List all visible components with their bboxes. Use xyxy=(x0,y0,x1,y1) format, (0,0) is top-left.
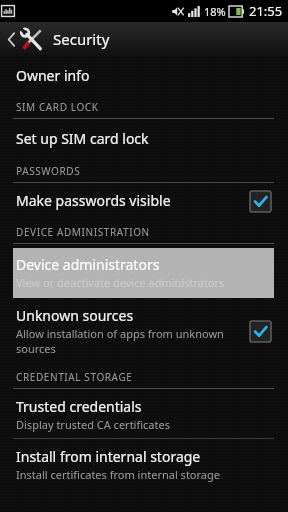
staticText: DEVICE ADMINISTRATION xyxy=(16,225,150,239)
staticText: Install from internal storage xyxy=(16,447,201,466)
other: Navigate up xyxy=(7,31,16,48)
button[interactable]: Owner info xyxy=(0,60,288,91)
button[interactable]: Set up SIM card lock xyxy=(0,123,288,155)
staticText: PASSWORDS xyxy=(16,164,81,178)
staticText: Make passwords visible xyxy=(16,191,171,210)
button[interactable]: Trusted credentials xyxy=(0,392,288,438)
staticText: Display trusted CA certificates xyxy=(16,417,170,432)
staticText: SIM CARD LOCK xyxy=(16,100,99,114)
staticText: View or deactivate device administrators xyxy=(16,275,225,290)
staticText: Unknown sources xyxy=(16,306,134,325)
other: Silent mode xyxy=(171,5,184,18)
staticText: CREDENTIAL STORAGE xyxy=(16,370,133,384)
staticText: 18% xyxy=(204,4,226,19)
button[interactable]: Unknown sources xyxy=(0,301,288,361)
button[interactable]: Navigate up xyxy=(0,22,288,56)
button[interactable]: Device administrators xyxy=(13,248,274,298)
staticText: Allow installation of apps from unknown … xyxy=(16,326,224,356)
button[interactable]: Make passwords visible xyxy=(0,185,288,216)
button[interactable]: Install from internal storage xyxy=(0,442,288,488)
staticText: Trusted credentials xyxy=(16,397,142,416)
staticText: Set up SIM card lock xyxy=(16,129,149,148)
staticText: Device administrators xyxy=(16,255,160,274)
staticText: Owner info xyxy=(16,66,90,85)
staticText: Security xyxy=(53,29,110,49)
staticText: Install certificates from internal stora… xyxy=(16,467,220,482)
staticText: 21:55 xyxy=(249,2,283,20)
